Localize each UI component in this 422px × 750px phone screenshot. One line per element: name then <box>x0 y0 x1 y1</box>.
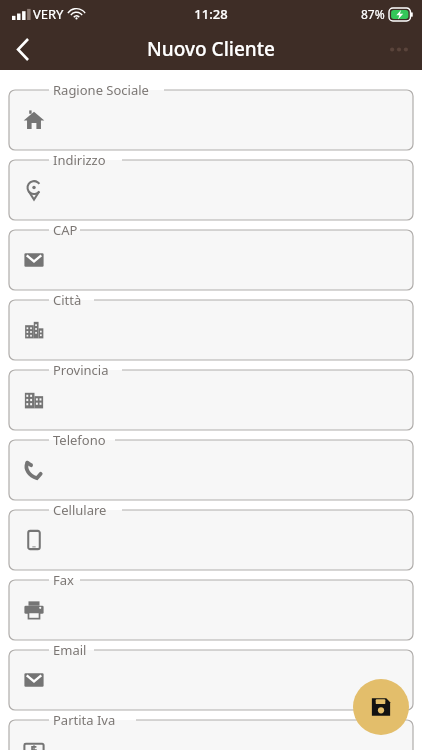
staticText: CAP <box>53 221 78 239</box>
button[interactable]: Cellulare <box>9 500 413 570</box>
staticText: 11:28 <box>194 5 228 23</box>
button[interactable]: Back <box>0 28 46 70</box>
staticText: Fax <box>53 571 74 589</box>
button[interactable]: Fax <box>9 570 413 640</box>
button[interactable]: Save <box>353 679 409 735</box>
button[interactable]: Città <box>9 290 413 360</box>
button[interactable]: More options <box>376 28 422 70</box>
staticText: Cellulare <box>53 501 107 519</box>
button[interactable]: Telefono <box>9 430 413 500</box>
staticText: Telefono <box>53 431 106 449</box>
button[interactable]: Partita Iva <box>9 710 413 750</box>
staticText: 87% <box>361 6 385 22</box>
button[interactable]: Provincia <box>9 360 413 430</box>
staticText: Indirizzo <box>53 151 106 169</box>
staticText: Partita Iva <box>53 711 116 729</box>
staticText: Città <box>53 291 82 309</box>
button[interactable]: Email <box>9 640 413 710</box>
button[interactable]: Ragione Sociale <box>9 80 413 150</box>
staticText: Ragione Sociale <box>53 81 149 99</box>
staticText: Provincia <box>53 361 109 379</box>
staticText: VERY <box>33 5 64 23</box>
staticText: Email <box>53 641 87 659</box>
button[interactable]: Indirizzo <box>9 150 413 220</box>
button[interactable]: CAP <box>9 220 413 290</box>
staticText: Nuovo Cliente <box>147 36 275 62</box>
